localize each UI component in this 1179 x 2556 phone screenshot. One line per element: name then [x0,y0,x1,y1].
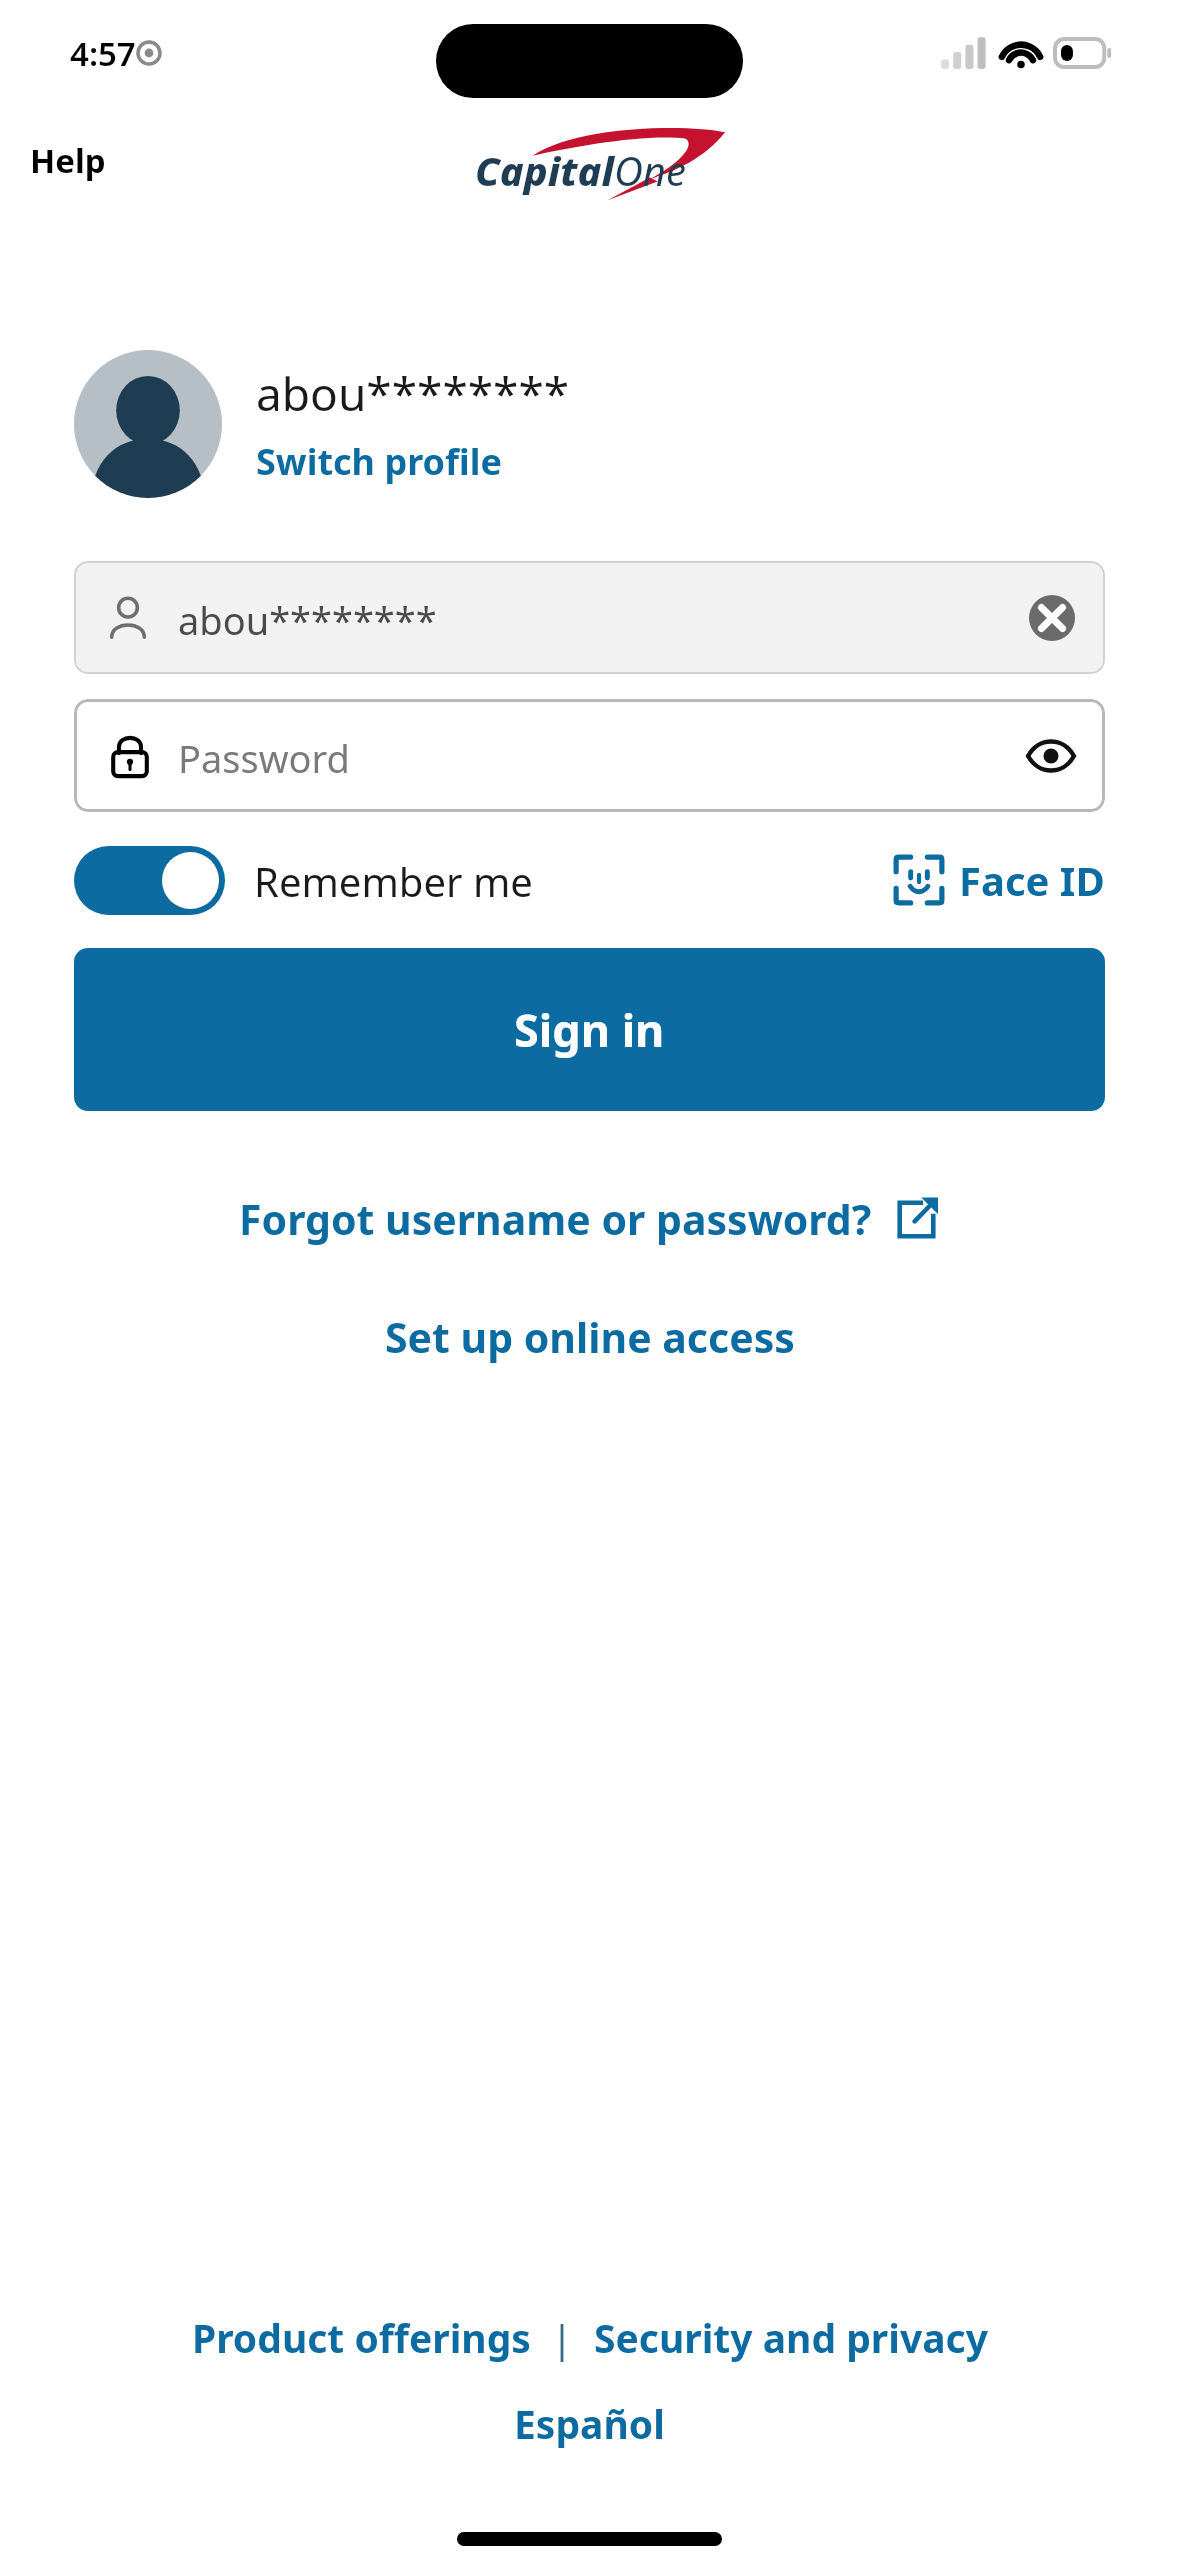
button[interactable]: abou******** [74,561,1105,674]
staticText: abou******** [256,362,570,425]
staticText: One [614,143,686,197]
button[interactable]: Face ID [893,853,1105,907]
staticText: Password [178,732,350,784]
staticText: Capital [475,143,614,197]
button[interactable]: Remember me [74,846,533,915]
button[interactable]: Clear username [1029,595,1075,641]
button[interactable]: Help [0,128,136,193]
staticText: Product offerings [192,2311,531,2364]
staticText: Help [30,138,106,183]
button[interactable]: Profile photo [74,350,222,498]
staticText: Switch profile [256,437,502,486]
other: Face ID [893,854,945,906]
button[interactable]: Forgot username or password? [239,1191,940,1247]
staticText: abou******** [178,594,437,646]
staticText: Remember me [254,854,533,908]
staticText: Face ID [959,853,1105,907]
staticText: 4:57 [70,31,136,76]
button[interactable]: Show password [1025,730,1077,782]
staticText: Security and privacy [594,2311,988,2364]
staticText: Set up online access [385,1309,795,1365]
button[interactable]: Product offerings [192,2311,531,2364]
staticText: Sign in [514,999,665,1060]
button[interactable]: Security and privacy [594,2311,988,2364]
button[interactable]: Set up online access [385,1309,795,1365]
button[interactable]: Sign in [74,948,1105,1111]
other: Opens in new window [892,1195,940,1243]
staticText: Español [514,2397,665,2450]
button[interactable]: Español [514,2397,665,2450]
staticText: Forgot username or password? [239,1191,872,1247]
staticText: | [531,2311,594,2364]
button[interactable]: Capital One [475,123,725,201]
button[interactable]: Switch profile [256,437,502,486]
button[interactable]: Password [74,699,1105,812]
